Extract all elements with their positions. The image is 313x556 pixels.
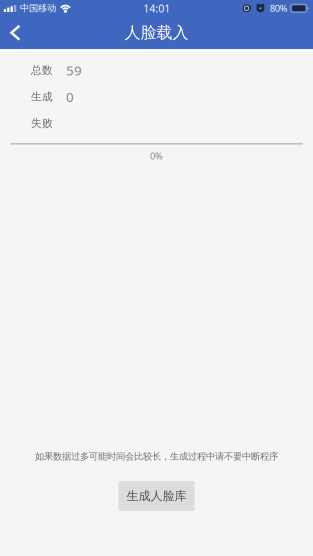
staticText: 0 [66, 88, 74, 106]
staticText: 中国移动 [20, 2, 56, 14]
staticText: 总数 [31, 64, 53, 77]
staticText: 生成人脸库 [126, 489, 186, 503]
staticText: 失败 [31, 117, 53, 130]
staticText: 80% [270, 2, 288, 14]
staticText: 人脸载入 [124, 23, 188, 43]
button[interactable]: 生成人脸库 [118, 481, 194, 511]
button[interactable]: Back [0, 18, 33, 48]
staticText: 如果数据过多可能时间会比较长，生成过程中请不要中断程序 [35, 450, 278, 462]
staticText: 0% [150, 150, 163, 162]
staticText: 14:01 [143, 1, 170, 15]
staticText: 生成 [31, 90, 53, 103]
staticText: 59 [66, 61, 82, 79]
